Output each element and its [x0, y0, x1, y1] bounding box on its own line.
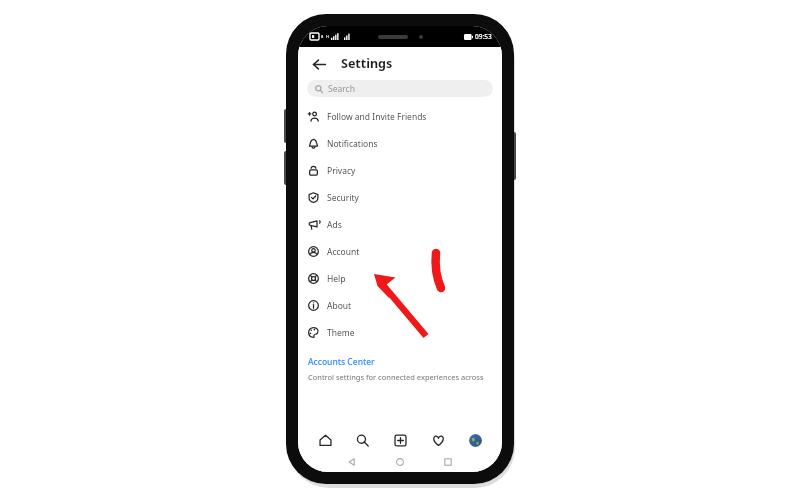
button[interactable]: Back — [337, 452, 367, 472]
button[interactable]: Activity — [427, 429, 449, 451]
staticText: Notifications — [327, 138, 378, 150]
staticText: Search — [328, 83, 355, 95]
button[interactable]: Search — [307, 80, 493, 97]
staticText: Settings — [341, 55, 393, 72]
button[interactable]: Security — [298, 184, 502, 211]
staticText: 8 — [321, 34, 324, 39]
staticText: Security — [327, 192, 359, 204]
button[interactable]: Follow and Invite Friends — [298, 103, 502, 130]
staticText: Follow and Invite Friends — [327, 111, 427, 123]
button[interactable]: Recent apps — [433, 452, 463, 472]
button[interactable]: Ads — [298, 211, 502, 238]
staticText: About — [327, 300, 352, 312]
button[interactable]: Back — [308, 53, 330, 75]
button[interactable]: Privacy — [298, 157, 502, 184]
button[interactable]: Theme — [298, 319, 502, 346]
staticText: H — [326, 34, 329, 39]
staticText: Account — [327, 246, 360, 258]
button[interactable]: Account — [298, 238, 502, 265]
staticText: Privacy — [327, 165, 356, 177]
button[interactable]: Search — [351, 429, 373, 451]
button[interactable]: Notifications — [298, 130, 502, 157]
button[interactable]: About — [298, 292, 502, 319]
staticText: Ads — [327, 219, 342, 231]
staticText: 09:53 — [475, 32, 492, 41]
button[interactable]: Create — [389, 429, 411, 451]
button[interactable]: Home — [314, 429, 336, 451]
button[interactable]: Profile — [464, 429, 486, 451]
button[interactable]: Help — [298, 265, 502, 292]
staticText: Theme — [327, 327, 355, 339]
staticText: Accounts Center — [308, 356, 375, 368]
button[interactable]: Home — [385, 452, 415, 472]
staticText: Control settings for connected experienc… — [308, 372, 484, 382]
button[interactable]: Accounts Center — [298, 356, 502, 382]
staticText: Help — [327, 273, 346, 285]
